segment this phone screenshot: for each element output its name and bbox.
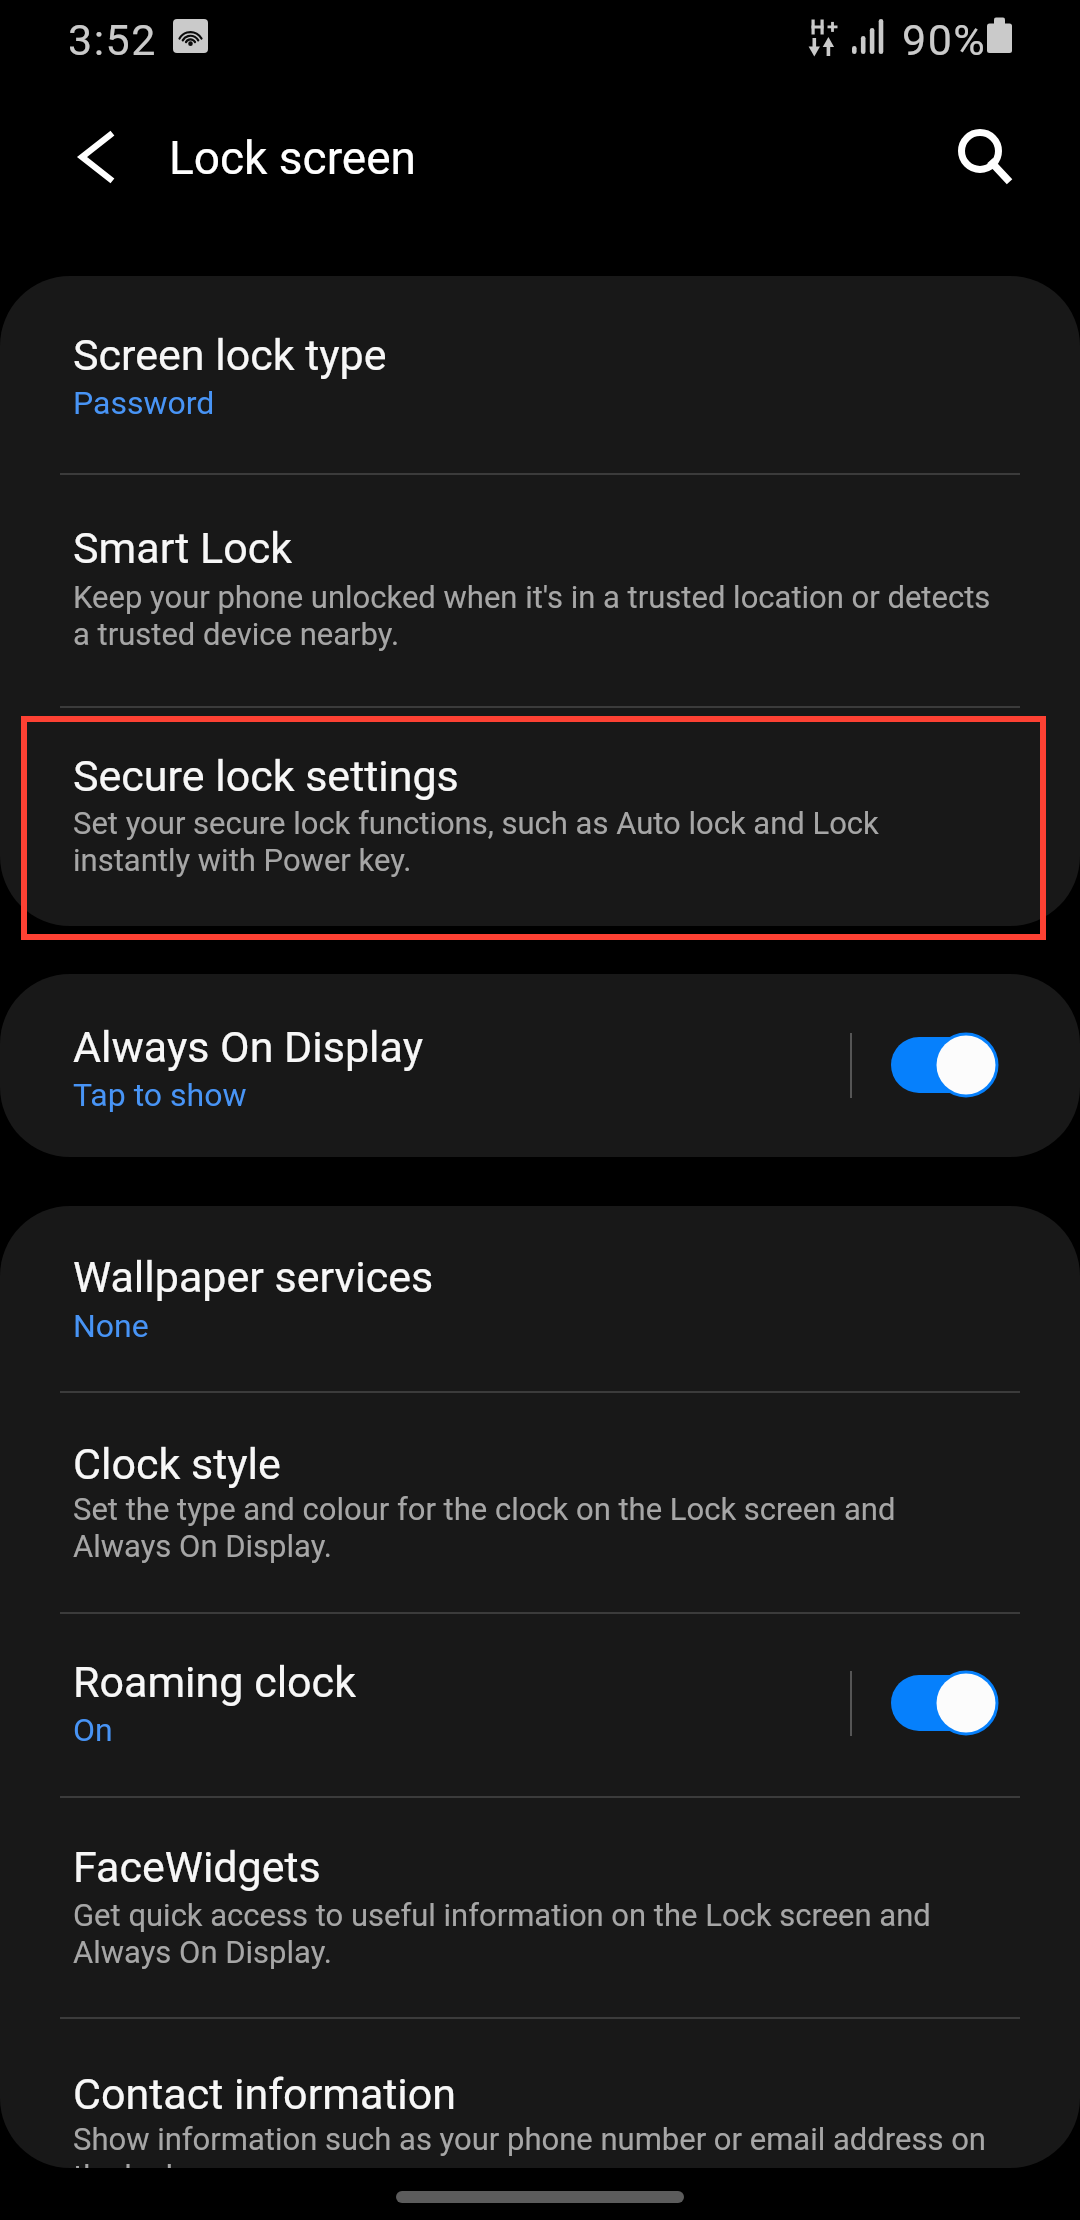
staticText: Password [73,382,215,422]
staticText: 3:52 [68,19,157,65]
staticText: Lock screen [169,130,416,186]
staticText: Clock style [73,1438,281,1490]
staticText: Roaming clock [73,1656,356,1708]
staticText: Always On Display [73,1021,423,1073]
staticText: None [73,1305,149,1345]
button[interactable]: FaceWidgets [0,1798,1080,2017]
button[interactable]: Navigate up [53,114,137,198]
staticText: Contact information [73,2068,457,2120]
staticText: 90% [902,19,987,65]
staticText: Set the type and colour for the clock on… [73,1491,993,1565]
staticText: FaceWidgets [73,1841,321,1893]
button[interactable]: Screen lock type [0,276,1080,473]
staticText: Wallpaper services [73,1251,434,1303]
button[interactable]: Clock style [0,1393,1080,1612]
staticText: Secure lock settings [73,750,459,802]
button[interactable]: Wallpaper services [0,1206,1080,1391]
button[interactable]: Roaming clock [0,1614,1080,1796]
button[interactable]: Always On Display [0,974,1080,1157]
staticText: Tap to show [73,1074,247,1114]
button[interactable]: Secure lock settings [0,708,1080,926]
button[interactable]: Toggle Roaming clock [880,1659,1016,1747]
staticText: On [73,1709,113,1749]
staticText: Screen lock type [73,329,387,381]
button[interactable]: Contact information [0,2019,1080,2168]
staticText: Show information such as your phone numb… [73,2121,993,2195]
staticText: Keep your phone unlocked when it's in a … [73,579,993,653]
button[interactable]: Toggle Always On Display [880,1021,1016,1109]
button[interactable]: Smart Lock [0,475,1080,706]
staticText: Smart Lock [73,522,292,574]
button[interactable]: Search [938,109,1022,193]
staticText: Get quick access to useful information o… [73,1897,993,1971]
staticText: Set your secure lock functions, such as … [73,805,993,879]
